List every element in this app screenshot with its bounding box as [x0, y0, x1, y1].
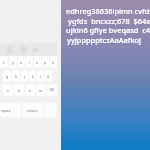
button[interactable]: o: [34, 56, 41, 68]
button[interactable]: b: [14, 84, 24, 96]
staticText: o: [36, 60, 39, 65]
staticText: ujkin6 gflye bveqasd c45: [66, 25, 150, 35]
staticText: b: [18, 88, 21, 93]
staticText: u: [20, 60, 23, 65]
staticText: k: [32, 74, 34, 79]
button[interactable]: Sticker: [16, 43, 30, 56]
button[interactable]: n: [25, 84, 35, 96]
button[interactable]: return: [22, 103, 43, 117]
button[interactable]: u: [18, 56, 25, 68]
staticText: h: [15, 74, 18, 79]
staticText: i: [29, 60, 30, 65]
button[interactable]: ⌫: [47, 84, 57, 96]
staticText: ü: [52, 60, 55, 65]
staticText: j: [24, 74, 25, 79]
button[interactable]: i: [26, 56, 33, 68]
button[interactable]: l: [37, 70, 44, 82]
staticText: ygfds bncxzz;678 $64xs: [68, 16, 150, 26]
staticText: v: [7, 88, 9, 93]
staticText: p: [44, 60, 47, 65]
button[interactable]: ñ: [45, 70, 52, 82]
staticText: ⌫: [49, 88, 55, 92]
staticText: g: [6, 74, 9, 79]
staticText: space: [1, 108, 11, 113]
button[interactable]: space: [0, 103, 21, 117]
button[interactable]: Emoji: [2, 43, 16, 56]
button[interactable]: k: [29, 70, 36, 82]
staticText: yyjppppptczAaAafkoj: [67, 35, 142, 45]
button[interactable]: m: [36, 84, 46, 96]
staticText: edhreg38636ipimn cvfds: [66, 6, 150, 16]
button[interactable]: p: [42, 56, 49, 68]
button[interactable]: ü: [50, 56, 57, 68]
button[interactable]: Send: [30, 43, 44, 56]
button[interactable]: y: [9, 56, 17, 68]
button[interactable]: g: [3, 70, 11, 82]
staticText: l: [40, 74, 41, 79]
button[interactable]: v: [3, 84, 13, 96]
staticText: m: [39, 88, 43, 93]
staticText: y: [12, 60, 14, 65]
staticText: t: [3, 60, 5, 65]
button[interactable]: t: [0, 56, 8, 68]
staticText: n: [29, 88, 32, 93]
staticText: return: [27, 108, 38, 113]
button[interactable]: h: [12, 70, 20, 82]
button[interactable]: j: [21, 70, 28, 82]
staticText: ñ: [47, 74, 50, 79]
